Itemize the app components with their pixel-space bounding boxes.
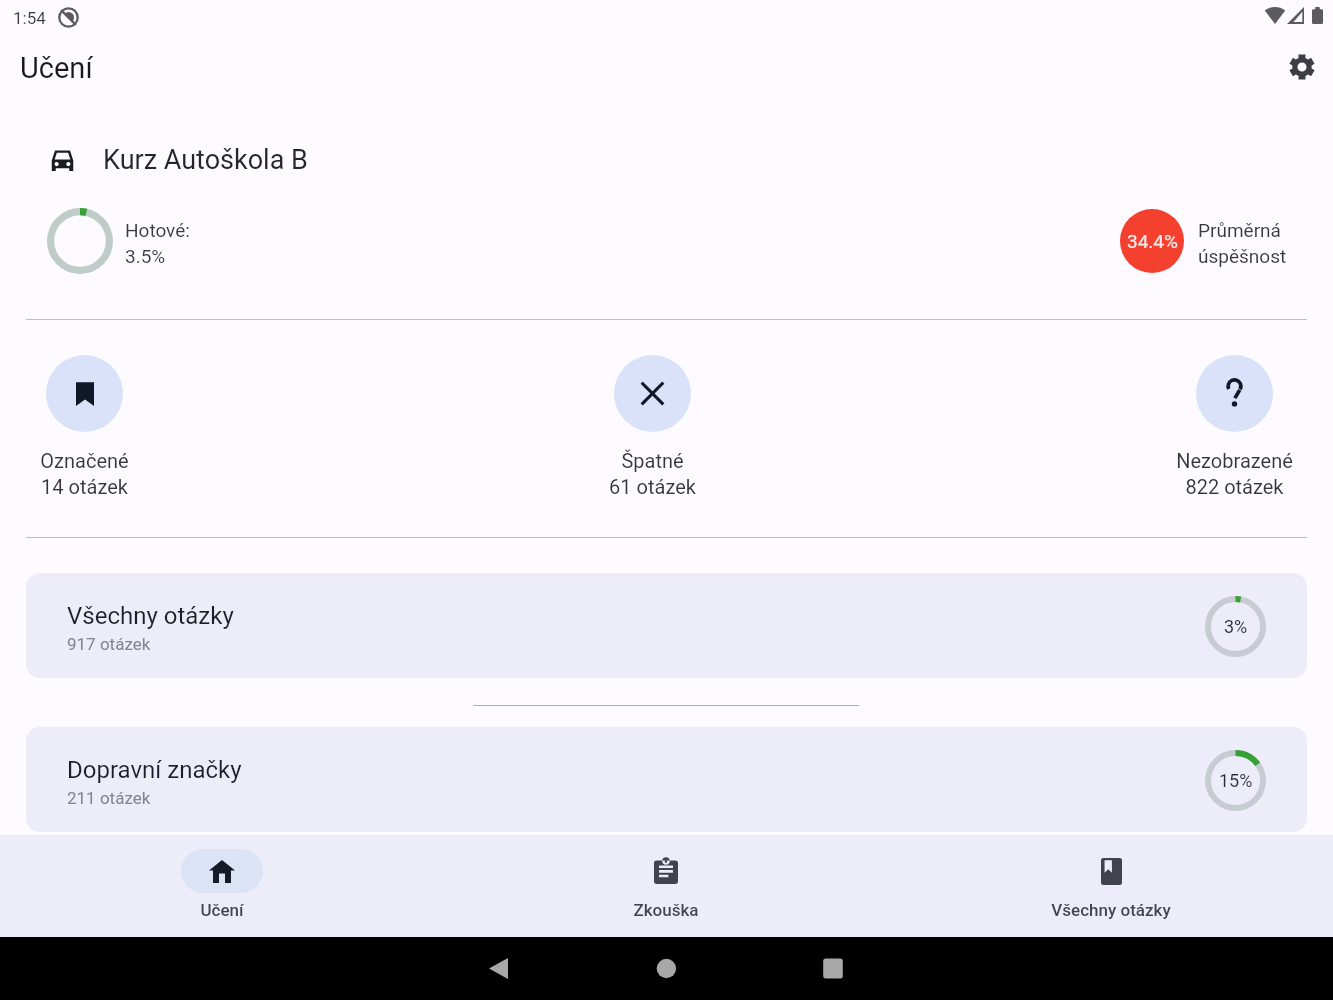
button[interactable]: Učení xyxy=(112,835,332,937)
staticText: Učení xyxy=(20,51,93,85)
button[interactable]: Označené 14 otázek xyxy=(40,355,129,499)
button[interactable]: Všechny otázky xyxy=(26,573,1307,678)
staticText: 917 otázek xyxy=(67,634,151,654)
staticText: Průměrná úspěšnost xyxy=(1198,219,1287,267)
button[interactable]: Zkouška xyxy=(556,835,776,937)
staticText: Hotové: 3.5% xyxy=(125,219,190,267)
staticText: Všechny otázky xyxy=(1051,900,1171,920)
staticText: 15% xyxy=(1219,770,1253,791)
button[interactable]: Všechny otázky xyxy=(1001,835,1221,937)
other: Wi-Fi xyxy=(1265,7,1285,24)
staticText: Všechny otázky xyxy=(67,602,234,630)
other: Battery xyxy=(1312,7,1323,24)
staticText: Učení xyxy=(200,900,244,920)
staticText: 1:54 xyxy=(13,8,46,28)
staticText: Kurz Autoškola B xyxy=(103,144,308,176)
staticText: Nezobrazené 822 otázek xyxy=(1176,449,1293,499)
button[interactable]: Dopravní značky xyxy=(26,727,1307,832)
button[interactable]: Nezobrazené 822 otázek xyxy=(1176,355,1293,499)
other: Mobile signal xyxy=(1287,7,1304,24)
staticText: 34.4% xyxy=(1127,230,1178,252)
staticText: 3% xyxy=(1224,616,1248,637)
staticText: Označené 14 otázek xyxy=(40,449,129,499)
staticText: Zkouška xyxy=(633,900,699,920)
button[interactable]: Špatné 61 otázek xyxy=(609,355,696,499)
button[interactable]: Settings xyxy=(1278,43,1326,91)
staticText: 211 otázek xyxy=(67,788,151,808)
staticText: Špatné 61 otázek xyxy=(609,449,696,499)
staticText: Dopravní značky xyxy=(67,756,242,784)
